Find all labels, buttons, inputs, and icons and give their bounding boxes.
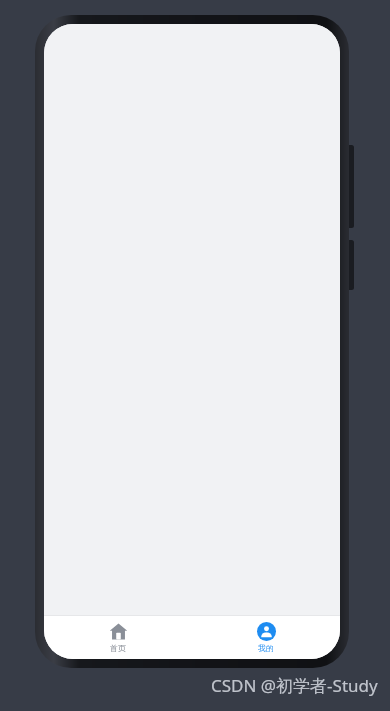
staticText: 我的 — [258, 643, 274, 653]
button[interactable]: 我的 — [192, 616, 340, 659]
button[interactable]: 首页 — [44, 616, 192, 659]
staticText: 首页 — [110, 643, 126, 653]
staticText: CSDN @初学者-Study — [211, 674, 378, 697]
